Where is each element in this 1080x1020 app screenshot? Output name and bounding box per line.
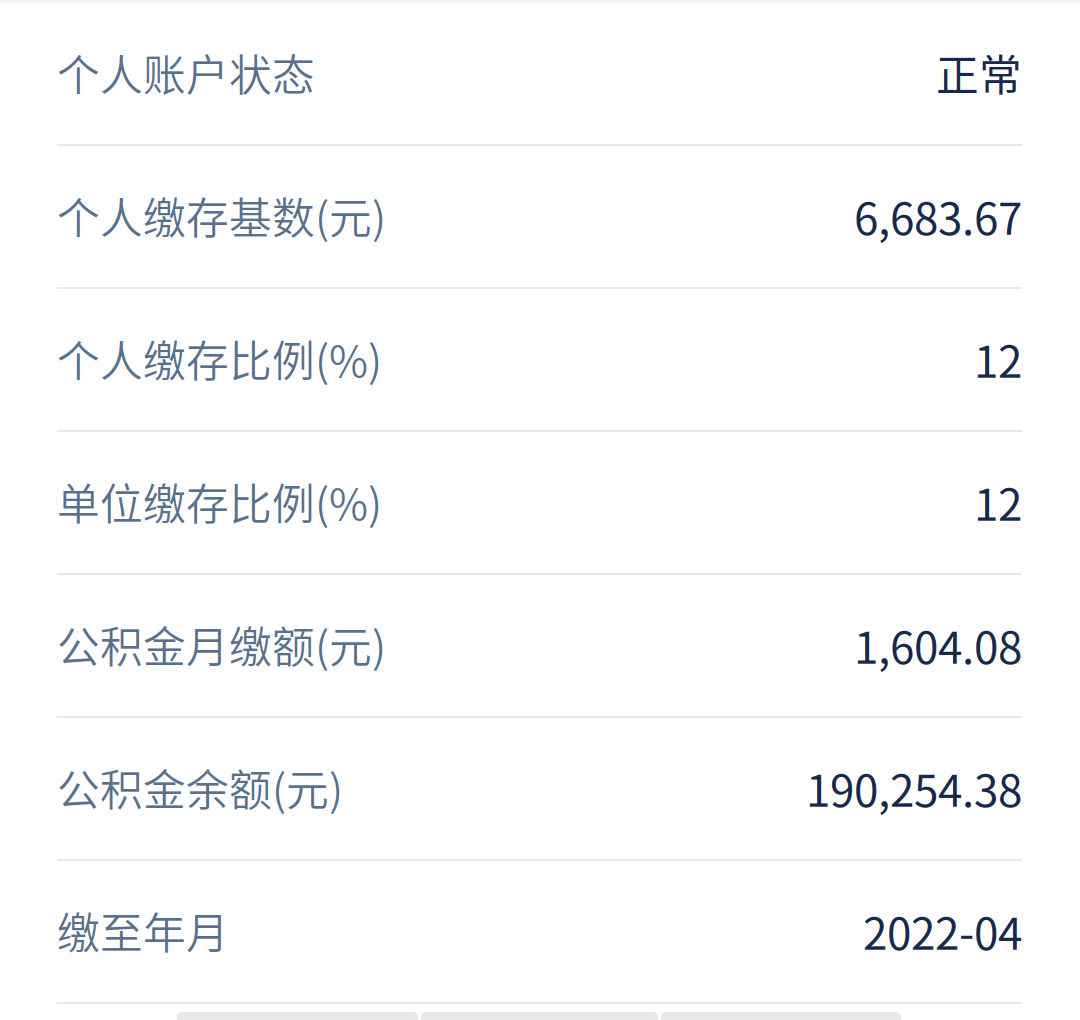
staticText: 12 xyxy=(974,327,1022,390)
staticText: 2022-04 xyxy=(863,899,1022,962)
staticText: 个人账户状态 xyxy=(57,42,315,103)
staticText: 公积金余额(元) xyxy=(57,757,343,818)
staticText: 公积金月缴额(元) xyxy=(57,614,386,675)
button[interactable]: 缴至年月 xyxy=(0,861,1080,1004)
staticText: 6,683.67 xyxy=(854,184,1022,247)
staticText: 个人缴存基数(元) xyxy=(57,185,386,246)
staticText: 190,254.38 xyxy=(806,756,1022,819)
button[interactable]: 公积金余额(元) xyxy=(0,718,1080,861)
staticText: 个人缴存比例(%) xyxy=(57,328,382,389)
staticText: 单位缴存比例(%) xyxy=(57,471,382,532)
button[interactable]: 个人缴存比例(%) xyxy=(0,289,1080,432)
button[interactable]: 公积金月缴额(元) xyxy=(0,575,1080,718)
staticText: 1,604.08 xyxy=(854,613,1022,676)
button[interactable]: 个人缴存基数(元) xyxy=(0,146,1080,289)
button[interactable]: 个人账户状态 xyxy=(0,3,1080,146)
staticText: 12 xyxy=(974,470,1022,533)
button[interactable]: 单位缴存比例(%) xyxy=(0,432,1080,575)
staticText: 正常 xyxy=(936,42,1022,103)
staticText: 缴至年月 xyxy=(57,900,229,961)
